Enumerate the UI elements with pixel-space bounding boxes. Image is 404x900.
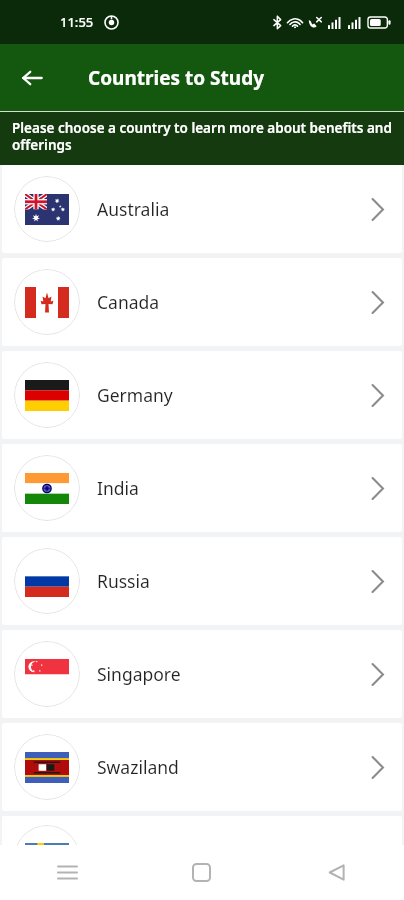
button[interactable]: Home — [134, 845, 269, 900]
staticText: Countries to Study — [88, 65, 264, 91]
staticText: 11:55 — [60, 13, 94, 31]
button[interactable]: India — [2, 444, 402, 532]
button[interactable]: Russia — [2, 537, 402, 625]
staticText: India — [97, 476, 371, 500]
button[interactable]: Sweden — [2, 816, 402, 900]
staticText: Swaziland — [97, 755, 371, 779]
button[interactable]: Recents — [0, 845, 134, 900]
staticText: Please choose a country to learn more ab… — [12, 119, 394, 154]
staticText: Germany — [97, 383, 371, 407]
button[interactable]: Back — [10, 56, 54, 100]
staticText: Sweden — [97, 846, 371, 870]
button[interactable]: Singapore — [2, 630, 402, 718]
button[interactable]: Australia — [2, 165, 402, 253]
button[interactable]: Canada — [2, 258, 402, 346]
staticText: Australia — [97, 197, 371, 221]
button[interactable]: Back — [269, 845, 404, 900]
staticText: Russia — [97, 569, 371, 593]
button[interactable]: Swaziland — [2, 723, 402, 811]
staticText: Canada — [97, 290, 371, 314]
button[interactable]: Germany — [2, 351, 402, 439]
staticText: Singapore — [97, 662, 371, 686]
